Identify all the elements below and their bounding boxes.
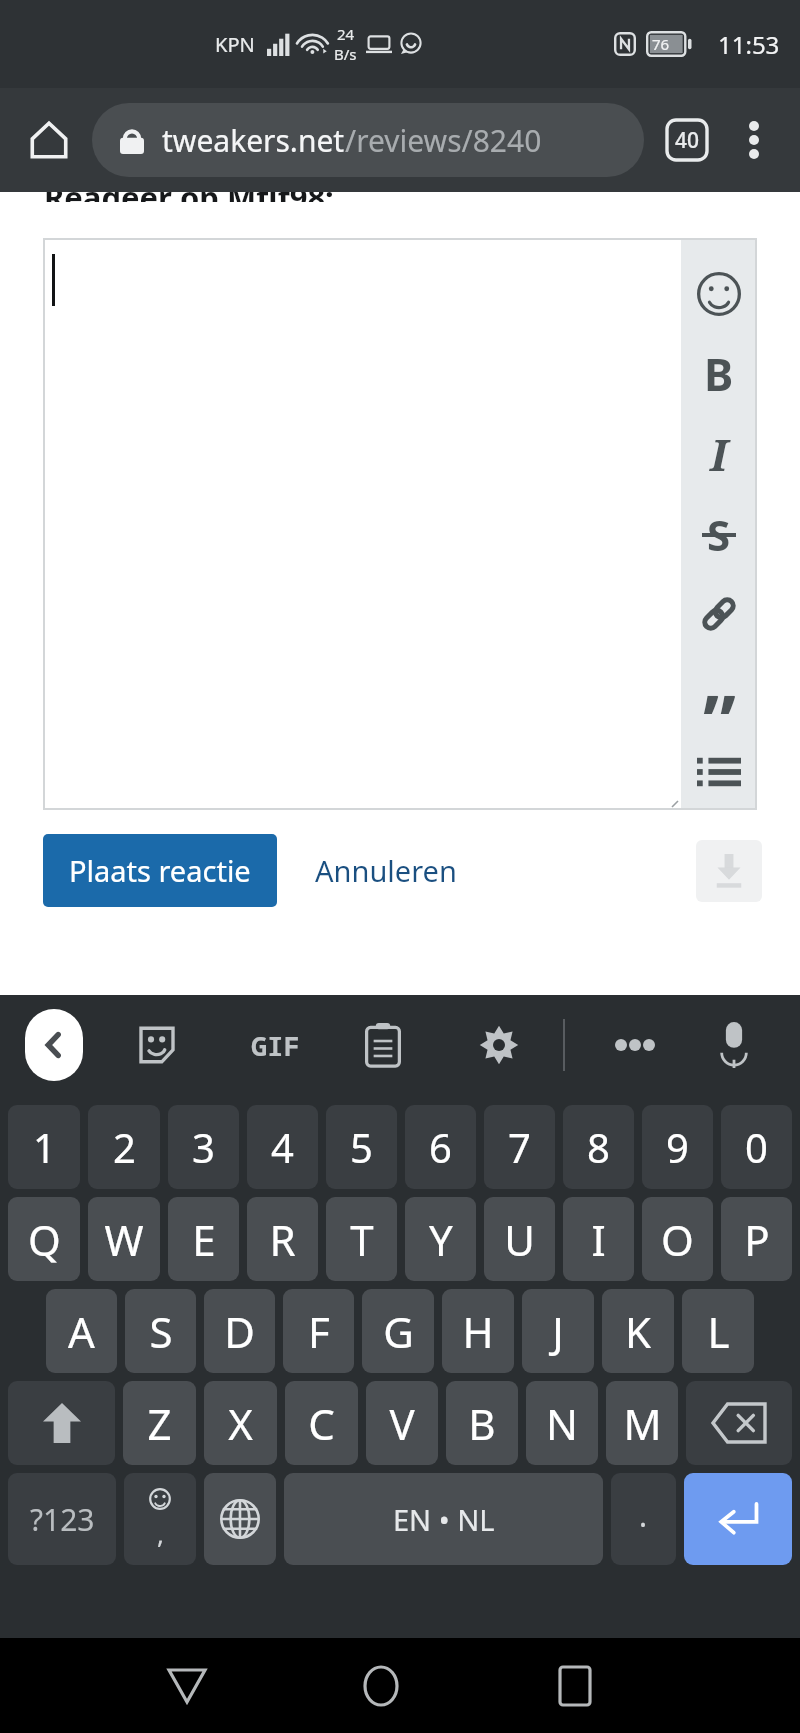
button[interactable]: Quote: [681, 654, 757, 734]
button[interactable]: More: [605, 1015, 665, 1075]
staticText: /reviews/8240: [345, 120, 542, 161]
staticText: 3: [192, 1120, 215, 1174]
button[interactable]: Plaats reactie: [43, 834, 277, 907]
staticText: 5: [350, 1120, 373, 1174]
button[interactable]: M: [606, 1381, 678, 1465]
button[interactable]: X: [204, 1381, 277, 1465]
button[interactable]: Backspace: [686, 1381, 792, 1465]
button[interactable]: H: [442, 1289, 514, 1373]
button[interactable]: Annuleren: [307, 837, 465, 904]
button[interactable]: More options: [726, 112, 782, 168]
button[interactable]: .: [611, 1473, 676, 1565]
staticText: 1: [33, 1120, 56, 1174]
staticText: 6: [429, 1120, 452, 1174]
button[interactable]: C: [285, 1381, 358, 1465]
staticText: U: [504, 1211, 535, 1268]
staticText: 7: [508, 1120, 531, 1174]
button[interactable]: Z: [123, 1381, 196, 1465]
button[interactable]: Back: [25, 1009, 83, 1081]
button[interactable]: U: [484, 1197, 555, 1281]
button[interactable]: G: [362, 1289, 434, 1373]
staticText: L: [707, 1303, 730, 1360]
button[interactable]: I: [563, 1197, 634, 1281]
button[interactable]: Back: [147, 1646, 227, 1726]
button[interactable]: 6: [405, 1105, 476, 1189]
button[interactable]: 2: [88, 1105, 160, 1189]
staticText: N: [546, 1395, 578, 1452]
staticText: 40: [675, 126, 700, 155]
staticText: C: [308, 1395, 335, 1452]
staticText: O: [661, 1211, 694, 1268]
staticText: A: [68, 1303, 95, 1360]
staticText: Q: [28, 1211, 61, 1268]
button[interactable]: O: [642, 1197, 713, 1281]
button[interactable]: tweakers.net: [92, 103, 644, 177]
staticText: EN • NL: [393, 1500, 495, 1539]
button[interactable]: E: [168, 1197, 239, 1281]
button[interactable]: D: [204, 1289, 275, 1373]
staticText: B/s: [334, 44, 357, 64]
button[interactable]: Home: [18, 109, 80, 171]
staticText: .: [639, 1495, 648, 1536]
button[interactable]: 0: [721, 1105, 792, 1189]
button[interactable]: P: [721, 1197, 792, 1281]
button[interactable]: ?123: [8, 1473, 116, 1565]
button[interactable]: N: [526, 1381, 598, 1465]
button[interactable]: Home: [341, 1646, 421, 1726]
staticText: ”: [703, 670, 736, 750]
button[interactable]: Italic: [681, 414, 757, 494]
button[interactable]: Emoji and comma: [124, 1473, 196, 1565]
button[interactable]: 8: [563, 1105, 634, 1189]
staticText: tweakers.net: [162, 120, 345, 161]
button[interactable]: Stickers: [127, 1015, 187, 1075]
button[interactable]: Strikethrough: [681, 494, 757, 574]
button[interactable]: 4: [247, 1105, 318, 1189]
button[interactable]: Q: [8, 1197, 80, 1281]
button[interactable]: V: [366, 1381, 438, 1465]
button[interactable]: Clipboard: [353, 1015, 413, 1075]
staticText: 4: [271, 1120, 294, 1174]
button[interactable]: Settings: [469, 1015, 529, 1075]
button[interactable]: Voice input: [704, 1015, 764, 1075]
button[interactable]: L: [682, 1289, 754, 1373]
button[interactable]: Enter: [684, 1473, 792, 1565]
button[interactable]: Insert link: [681, 574, 757, 654]
button[interactable]: B: [446, 1381, 518, 1465]
button[interactable]: EN • NL: [284, 1473, 603, 1565]
staticText: I: [591, 1211, 606, 1268]
button[interactable]: R: [247, 1197, 318, 1281]
staticText: S: [707, 506, 731, 563]
button[interactable]: Emoticon: [681, 254, 757, 334]
button[interactable]: Recent apps: [535, 1646, 615, 1726]
button[interactable]: Tabs: 40: [658, 111, 716, 169]
button[interactable]: K: [602, 1289, 674, 1373]
staticText: GIF: [251, 1027, 300, 1064]
staticText: Annuleren: [315, 851, 457, 890]
button[interactable]: T: [326, 1197, 397, 1281]
button[interactable]: Y: [405, 1197, 476, 1281]
button[interactable]: J: [522, 1289, 594, 1373]
button[interactable]: 3: [168, 1105, 239, 1189]
staticText: P: [744, 1211, 770, 1268]
staticText: ,: [157, 1516, 164, 1551]
staticText: M: [623, 1395, 662, 1452]
staticText: X: [228, 1395, 253, 1452]
staticText: Y: [429, 1211, 453, 1268]
button[interactable]: F: [283, 1289, 354, 1373]
button[interactable]: Download: [696, 840, 762, 902]
button[interactable]: Bullet list: [681, 734, 757, 810]
button[interactable]: A: [46, 1289, 117, 1373]
button[interactable]: GIF: [245, 1015, 305, 1075]
button[interactable]: 5: [326, 1105, 397, 1189]
button[interactable]: Shift: [8, 1381, 115, 1465]
button[interactable]: 9: [642, 1105, 713, 1189]
button[interactable]: Bold: [681, 334, 757, 414]
button[interactable]: S: [125, 1289, 196, 1373]
button[interactable]: 7: [484, 1105, 555, 1189]
button[interactable]: Switch language: [204, 1473, 276, 1565]
staticText: E: [192, 1211, 216, 1268]
button[interactable]: W: [88, 1197, 160, 1281]
staticText: 76: [652, 34, 670, 54]
button[interactable]: 1: [8, 1105, 80, 1189]
staticText: 0: [745, 1120, 768, 1174]
